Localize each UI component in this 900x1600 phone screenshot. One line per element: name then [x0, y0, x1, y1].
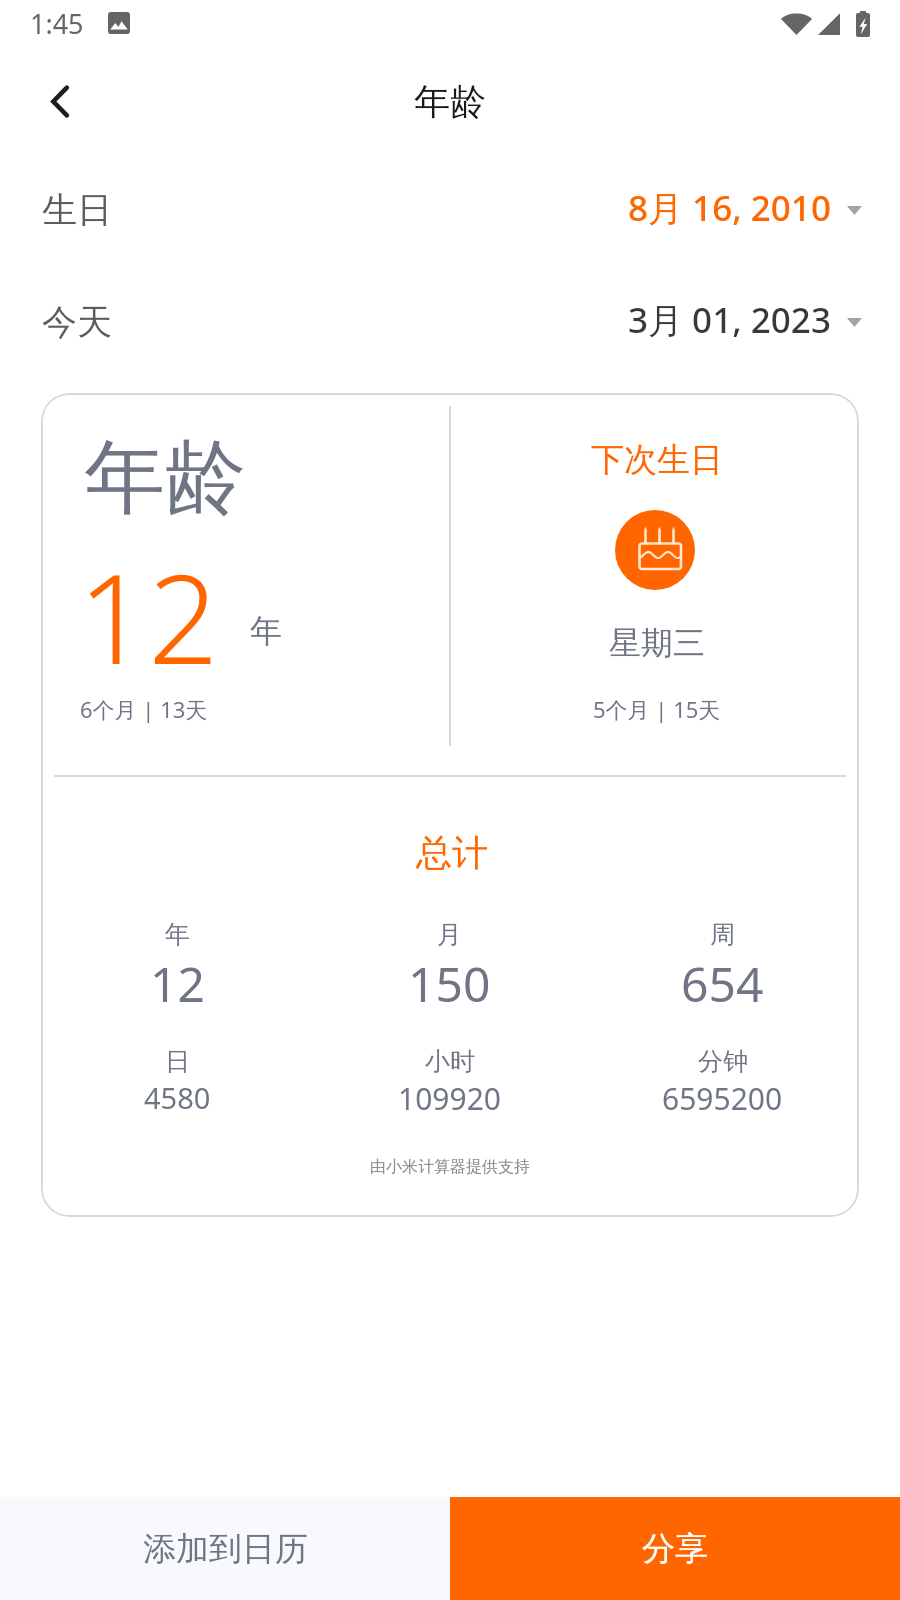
staticText: 4580: [144, 1078, 211, 1117]
button[interactable]: 生日: [0, 174, 900, 246]
staticText: 年龄: [414, 79, 486, 124]
staticText: 日: [165, 1046, 190, 1077]
staticText: 5个月 | 15天: [593, 694, 721, 724]
staticText: 生日: [42, 188, 112, 232]
staticText: 12: [150, 951, 205, 1016]
staticText: 小时: [425, 1046, 475, 1077]
staticText: 150: [408, 951, 491, 1016]
staticText: 分钟: [698, 1046, 748, 1077]
button[interactable]: 今天: [0, 286, 900, 358]
staticText: 星期三: [609, 623, 705, 663]
button[interactable]: 添加到日历: [0, 1497, 450, 1600]
staticText: 添加到日历: [143, 1528, 308, 1570]
staticText: 今天: [42, 300, 112, 344]
button[interactable]: Back: [28, 69, 92, 133]
staticText: 年: [165, 919, 190, 950]
staticText: 6595200: [662, 1078, 783, 1119]
staticText: 年: [250, 611, 282, 651]
staticText: 月: [437, 919, 462, 950]
staticText: 总计: [416, 830, 488, 875]
staticText: 分享: [642, 1528, 708, 1570]
staticText: 下次生日: [591, 439, 723, 481]
staticText: 1:45: [30, 5, 84, 42]
button[interactable]: 分享: [450, 1497, 900, 1600]
staticText: 109920: [398, 1078, 501, 1119]
staticText: 6个月 | 13天: [80, 694, 208, 724]
staticText: 周: [710, 919, 735, 950]
staticText: 8月 16, 2010: [628, 184, 831, 232]
staticText: 由小米计算器提供支持: [370, 1157, 530, 1177]
staticText: 3月 01, 2023: [628, 296, 831, 344]
staticText: 12: [78, 533, 219, 701]
staticText: 654: [681, 951, 764, 1016]
staticText: 年龄: [84, 427, 246, 529]
